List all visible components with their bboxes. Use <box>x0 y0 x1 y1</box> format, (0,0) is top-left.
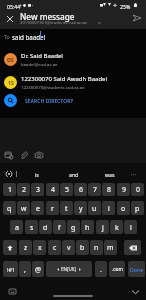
button[interactable]: z <box>19 240 32 255</box>
button[interactable]: . <box>95 261 107 277</box>
staticText: a <box>15 223 19 232</box>
button[interactable]: More suggestions <box>124 166 142 183</box>
staticText: x <box>38 243 42 252</box>
staticText: To <box>4 33 10 40</box>
button[interactable]: c <box>48 240 61 255</box>
button[interactable]: h <box>81 220 94 234</box>
button[interactable]: 2 <box>17 183 30 196</box>
button[interactable]: and <box>55 166 92 183</box>
staticText: m <box>107 243 114 252</box>
staticText: s <box>30 223 34 232</box>
staticText: 3 <box>36 185 40 194</box>
button[interactable]: 1S <box>0 71 146 93</box>
button[interactable]: Attach file <box>18 149 30 161</box>
button[interactable]: 6 <box>74 183 87 196</box>
staticText: and <box>69 171 79 178</box>
staticText: DS <box>7 56 14 63</box>
button[interactable]: 0 <box>131 183 144 196</box>
button[interactable]: a <box>10 220 23 234</box>
button[interactable]: Hide keyboard <box>129 286 141 298</box>
staticText: 2 <box>22 185 26 194</box>
button[interactable]: o <box>117 201 130 215</box>
button[interactable]: k <box>110 220 123 234</box>
button[interactable]: Space, language EN(UK) <box>46 261 92 277</box>
button[interactable]: j <box>96 220 109 234</box>
button[interactable]: was <box>91 166 128 183</box>
staticText: said baadel <box>12 33 46 41</box>
button[interactable]: Insert from Drive <box>3 149 15 161</box>
button[interactable]: r <box>46 201 59 215</box>
button[interactable]: l <box>124 220 137 234</box>
button[interactable]: 5 <box>60 183 73 196</box>
staticText: Dr. Said Baadel <box>21 52 63 60</box>
staticText: 1S <box>8 79 14 86</box>
button[interactable]: s <box>25 220 38 234</box>
button[interactable]: v <box>62 240 75 255</box>
button[interactable]: 8 <box>102 183 115 196</box>
button[interactable]: 4 <box>46 183 59 196</box>
button[interactable]: g <box>67 220 80 234</box>
button[interactable]: t <box>60 201 73 215</box>
staticText: New message <box>20 11 75 22</box>
staticText: i <box>108 204 110 213</box>
button[interactable]: 7 <box>88 183 101 196</box>
button[interactable]: p <box>131 201 144 215</box>
staticText: 0 <box>136 185 140 194</box>
button[interactable]: u <box>88 201 101 215</box>
button[interactable]: 1 <box>3 183 16 196</box>
button[interactable]: q <box>3 201 16 215</box>
staticText: b <box>80 243 85 252</box>
button[interactable]: m <box>104 240 117 255</box>
button[interactable]: Done <box>128 261 145 277</box>
staticText: l <box>130 223 132 232</box>
button[interactable]: 3 <box>31 183 44 196</box>
staticText: r <box>51 204 54 213</box>
staticText: 122300070 Said Awadh Baadel <box>21 75 108 83</box>
button[interactable]: b <box>76 240 89 255</box>
staticText: n <box>94 243 99 252</box>
staticText: k <box>115 223 119 232</box>
button[interactable]: Camera <box>33 149 45 161</box>
button[interactable]: is <box>18 166 55 183</box>
staticText: is <box>35 171 39 178</box>
staticText: 122300070@students.cud.ac.ae <box>21 84 85 90</box>
button[interactable]: DS <box>0 48 146 70</box>
staticText: 7 <box>93 185 97 194</box>
button[interactable]: y <box>74 201 87 215</box>
staticText: ⋯ <box>130 171 137 179</box>
staticText: .com <box>112 266 123 273</box>
button[interactable]: x <box>33 240 46 255</box>
staticText: t <box>65 204 68 213</box>
staticText: p <box>135 204 140 213</box>
staticText: Done <box>130 266 144 273</box>
staticText: 25% <box>120 3 131 10</box>
staticText: @ <box>35 265 42 274</box>
button[interactable]: !#1 <box>3 261 18 277</box>
staticText: , <box>24 265 26 274</box>
button[interactable]: Change keyboard <box>7 287 17 296</box>
staticText: z <box>24 243 28 252</box>
button[interactable]: Backspace <box>124 240 141 255</box>
button[interactable]: Voice input <box>4 169 13 178</box>
staticText: EN(UK) <box>61 266 77 272</box>
button[interactable]: @ <box>32 261 44 277</box>
button[interactable]: 9 <box>117 183 130 196</box>
button[interactable] <box>0 94 146 107</box>
button[interactable]: Send <box>129 10 145 26</box>
button[interactable]: , <box>19 261 31 277</box>
button[interactable]: w <box>17 201 30 215</box>
staticText: q <box>7 204 12 213</box>
button[interactable]: Shift <box>3 240 17 255</box>
staticText: u <box>92 204 97 213</box>
staticText: w <box>21 204 27 213</box>
button[interactable]: .com <box>109 261 125 277</box>
button[interactable]: d <box>39 220 52 234</box>
staticText: h <box>85 223 90 232</box>
button[interactable]: n <box>90 240 103 255</box>
button[interactable]: i <box>102 201 115 215</box>
button[interactable]: f <box>53 220 66 234</box>
button[interactable]: Close <box>2 11 17 26</box>
staticText: v <box>67 243 71 252</box>
staticText: was <box>105 171 115 178</box>
button[interactable]: e <box>31 201 44 215</box>
